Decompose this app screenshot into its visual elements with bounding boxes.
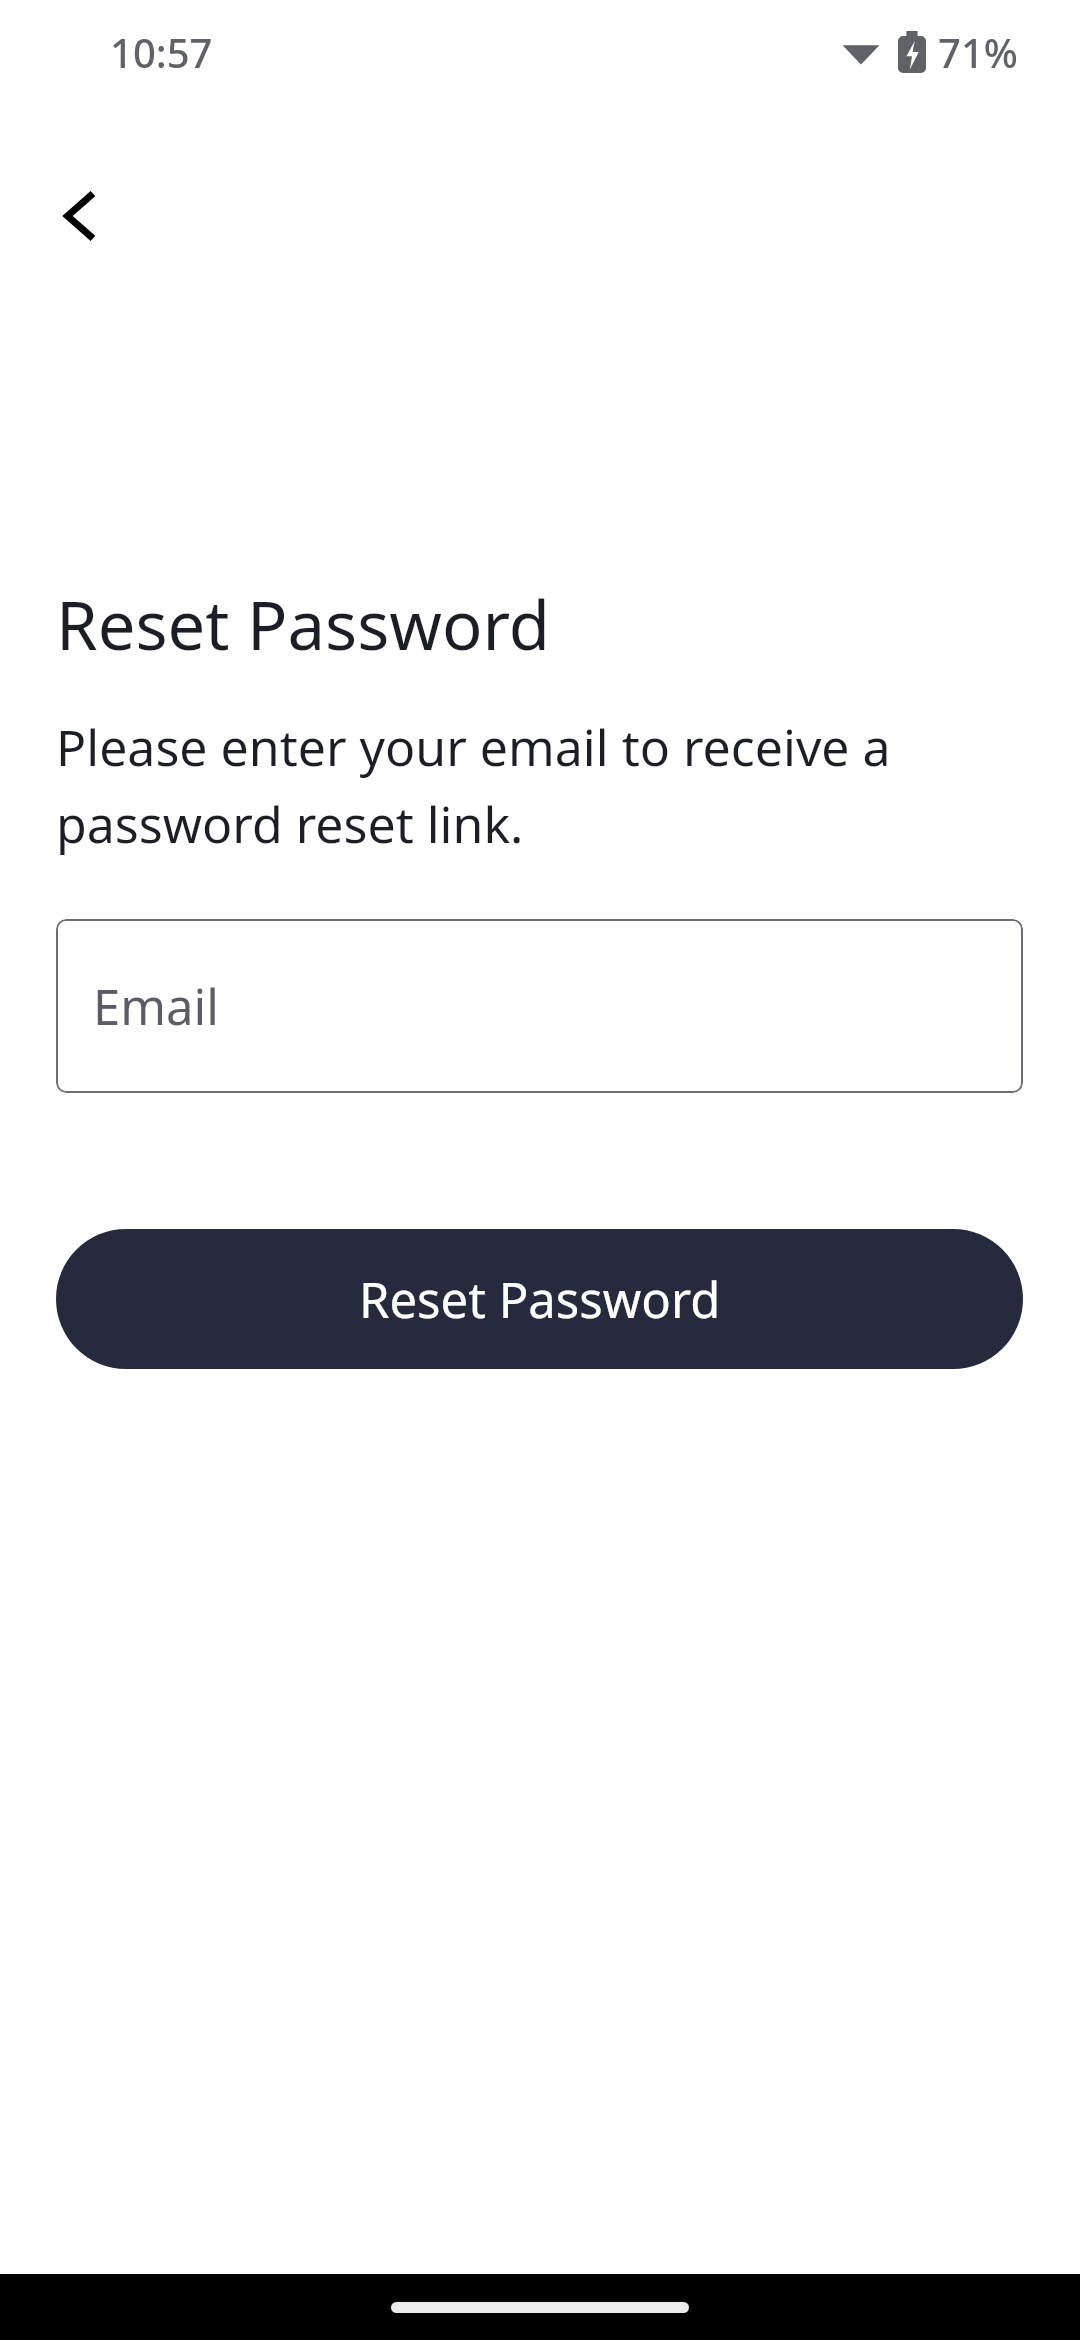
button[interactable]: Back — [28, 166, 128, 266]
staticText: 10:57 — [110, 25, 213, 79]
staticText: Email — [93, 973, 219, 1040]
staticText: Please enter your email to receive a pas… — [56, 713, 1014, 857]
button[interactable]: Email — [56, 919, 1023, 1093]
button[interactable]: Reset Password — [56, 1229, 1023, 1369]
staticText: 71% — [938, 25, 1018, 79]
staticText: Reset Password — [359, 1266, 721, 1333]
staticText: Reset Password — [56, 578, 550, 669]
